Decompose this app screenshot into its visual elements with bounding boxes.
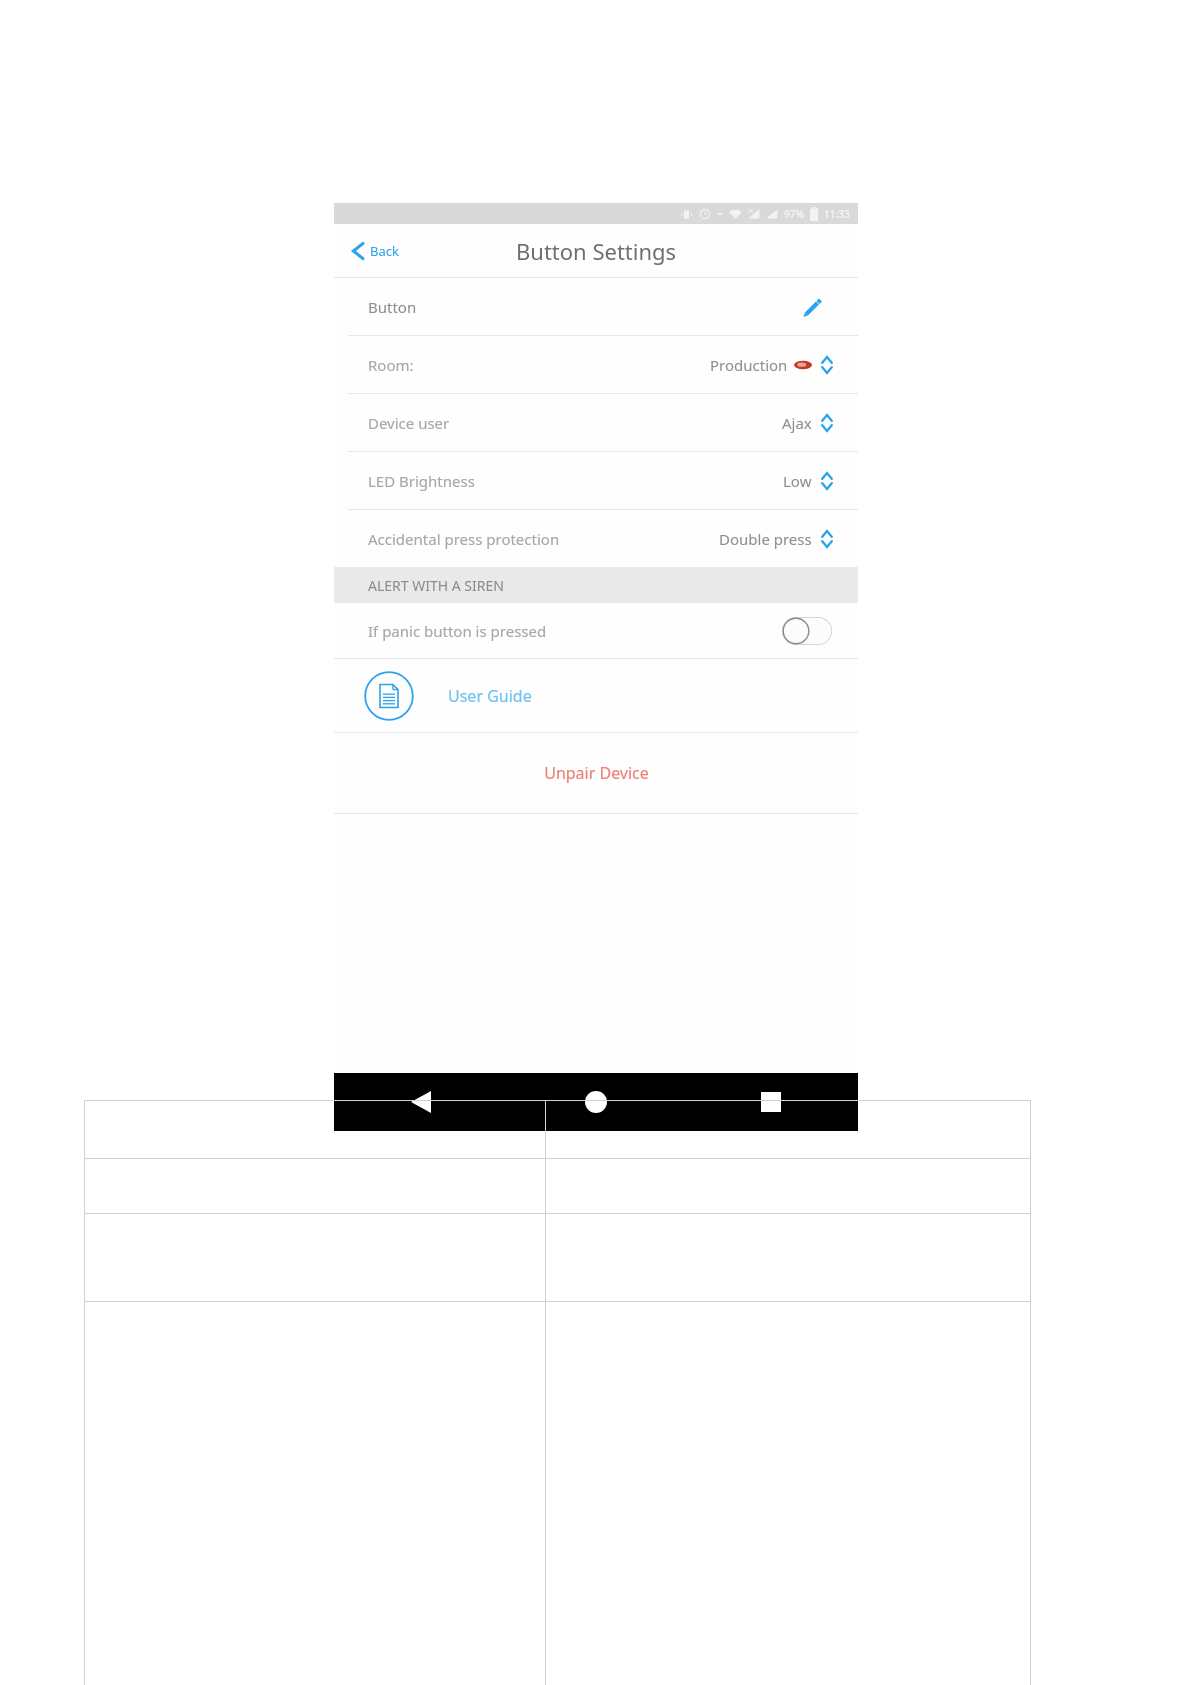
staticText: Button Settings	[516, 236, 677, 266]
staticText: 11:33	[824, 207, 850, 221]
staticText: LED Brightness	[368, 471, 475, 491]
button[interactable]: Home	[508, 1073, 683, 1131]
button[interactable]: Room:	[334, 336, 858, 393]
button[interactable]: Button	[334, 278, 858, 335]
staticText: User Guide	[448, 685, 532, 707]
button[interactable]: User Guide	[334, 659, 858, 732]
button[interactable]: Back	[334, 1073, 508, 1131]
staticText: 97%	[784, 207, 804, 221]
button[interactable]: If panic button is pressed	[334, 603, 858, 658]
staticText: ALERT WITH A SIREN	[368, 576, 504, 595]
button[interactable]: Accidental press protection	[334, 510, 858, 567]
staticText: Button	[368, 297, 417, 317]
staticText: Back	[370, 242, 399, 260]
button[interactable]: Unpair Device	[334, 733, 858, 813]
button[interactable]: Back	[348, 235, 403, 267]
staticText: Double press	[719, 529, 812, 549]
staticText: Unpair Device	[544, 762, 649, 784]
staticText: Production	[710, 355, 788, 375]
button[interactable]: Recent apps	[683, 1073, 858, 1131]
button[interactable]: LED Brightness	[334, 452, 858, 509]
staticText: Ajax	[782, 413, 812, 433]
other: Change value	[820, 528, 834, 550]
other: Edit name	[798, 292, 828, 322]
staticText: Accidental press protection	[368, 529, 560, 549]
other: Change value	[820, 470, 834, 492]
staticText: Device user	[368, 413, 450, 433]
staticText: If panic button is pressed	[368, 621, 547, 641]
staticText: Low	[783, 471, 812, 491]
other: Change value	[820, 354, 834, 376]
staticText: Room:	[368, 355, 414, 375]
button[interactable]: Device user	[334, 394, 858, 451]
other: Change value	[820, 412, 834, 434]
